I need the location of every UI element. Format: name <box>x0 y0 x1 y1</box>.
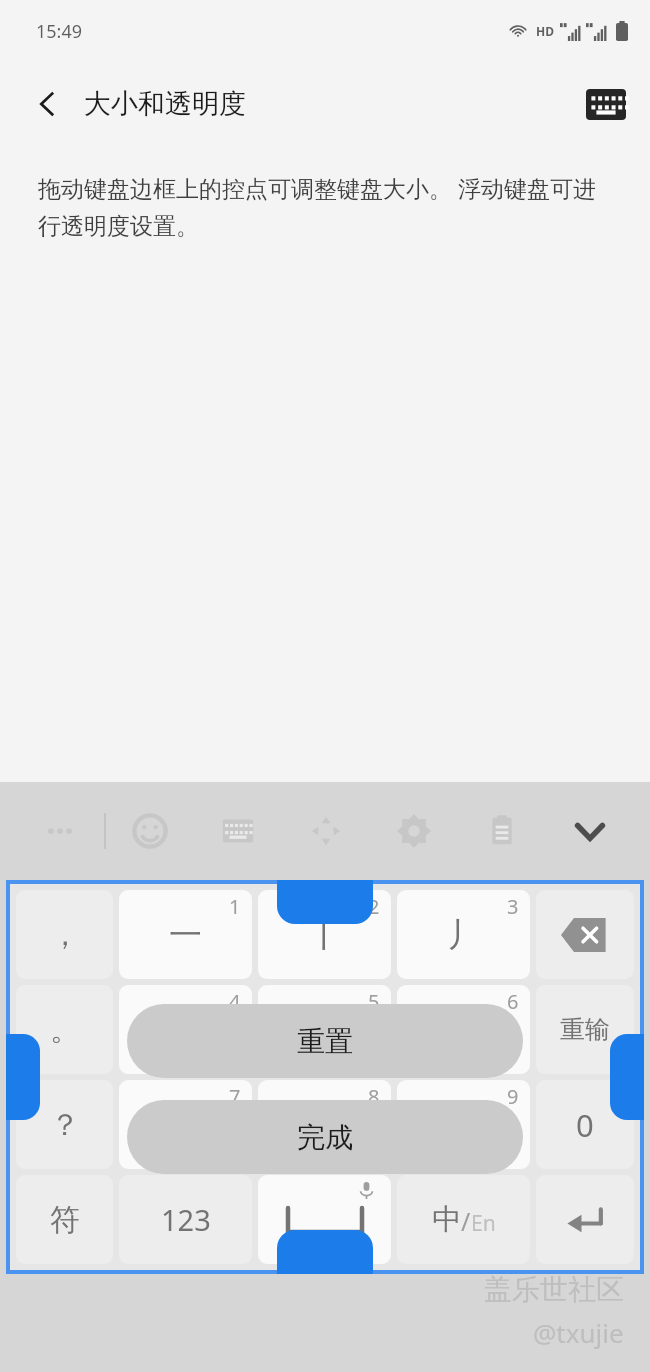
staticText: 一 <box>310 1011 340 1049</box>
staticText: 一 <box>169 914 202 956</box>
button[interactable]: 1 <box>119 890 252 979</box>
button[interactable]: Resize left <box>6 1034 40 1120</box>
staticText: ？ <box>50 1106 80 1144</box>
staticText: 。 <box>50 1011 80 1049</box>
staticText: 重置 <box>297 1024 353 1059</box>
staticText: En <box>471 1209 496 1238</box>
staticText: ， <box>50 916 80 954</box>
button[interactable]: ？ <box>16 1080 113 1169</box>
staticText: 重输 <box>560 1014 610 1045</box>
button[interactable]: Space <box>258 1175 391 1264</box>
button[interactable]: Back <box>18 75 76 133</box>
staticText: 0 <box>576 1104 594 1146</box>
button[interactable]: Emoji <box>106 782 194 880</box>
button[interactable]: Resize top <box>277 880 373 924</box>
staticText: 9 <box>507 1083 519 1110</box>
staticText: 丿 <box>447 914 480 956</box>
button[interactable]: Keyboard <box>578 76 634 132</box>
button[interactable]: Settings <box>370 782 458 880</box>
button[interactable]: 0 <box>536 1080 634 1169</box>
staticText: 中 <box>432 1201 461 1238</box>
button[interactable]: 123 <box>119 1175 252 1264</box>
staticText: 5 <box>368 988 380 1015</box>
staticText: 7 <box>229 1083 241 1110</box>
button[interactable]: 。 <box>16 985 113 1074</box>
button[interactable]: 重输 <box>536 985 634 1074</box>
button[interactable]: Key 8 <box>258 1080 391 1169</box>
staticText: 4 <box>229 988 241 1015</box>
button[interactable]: 5 <box>258 985 391 1074</box>
button[interactable]: 2 <box>258 890 391 979</box>
staticText: 8 <box>368 1083 380 1110</box>
staticText: 3 <box>507 893 519 920</box>
staticText: 大小和透明度 <box>84 87 246 121</box>
staticText: 符 <box>50 1201 80 1239</box>
button[interactable]: 重置 <box>127 1004 523 1078</box>
button[interactable]: Enter <box>536 1175 634 1264</box>
button[interactable]: Switch language <box>397 1175 530 1264</box>
staticText: HD <box>536 23 554 39</box>
button[interactable]: Resize bottom <box>277 1230 373 1274</box>
button[interactable]: Key 6 <box>397 985 530 1074</box>
button[interactable]: Clipboard <box>458 782 546 880</box>
staticText: 6 <box>507 988 519 1015</box>
button[interactable]: 符 <box>16 1175 113 1264</box>
staticText: 丨 <box>308 914 341 956</box>
button[interactable]: Key 9 <box>397 1080 530 1169</box>
button[interactable]: ， <box>16 890 113 979</box>
button[interactable]: Backspace <box>536 890 634 979</box>
staticText: 拖动键盘边框上的控点可调整键盘大小。 浮动键盘可进行透明度设置。 <box>38 172 612 241</box>
staticText: 15:49 <box>36 19 83 44</box>
staticText: 2 <box>368 893 380 920</box>
staticText: 1 <box>229 893 241 920</box>
staticText: 完成 <box>297 1120 353 1155</box>
staticText: / <box>461 1204 471 1238</box>
button[interactable]: 3 <box>397 890 530 979</box>
staticText: 123 <box>161 1200 211 1239</box>
staticText: @txujie <box>533 1315 624 1350</box>
staticText: 盖乐世社区 <box>484 1272 624 1307</box>
button[interactable]: Key 7 <box>119 1080 252 1169</box>
button[interactable]: Hide keyboard <box>546 782 634 880</box>
button[interactable]: Resize right <box>610 1034 644 1120</box>
button[interactable]: Key 4 <box>119 985 252 1074</box>
button[interactable]: Keyboard layout <box>194 782 282 880</box>
button[interactable]: 完成 <box>127 1100 523 1174</box>
